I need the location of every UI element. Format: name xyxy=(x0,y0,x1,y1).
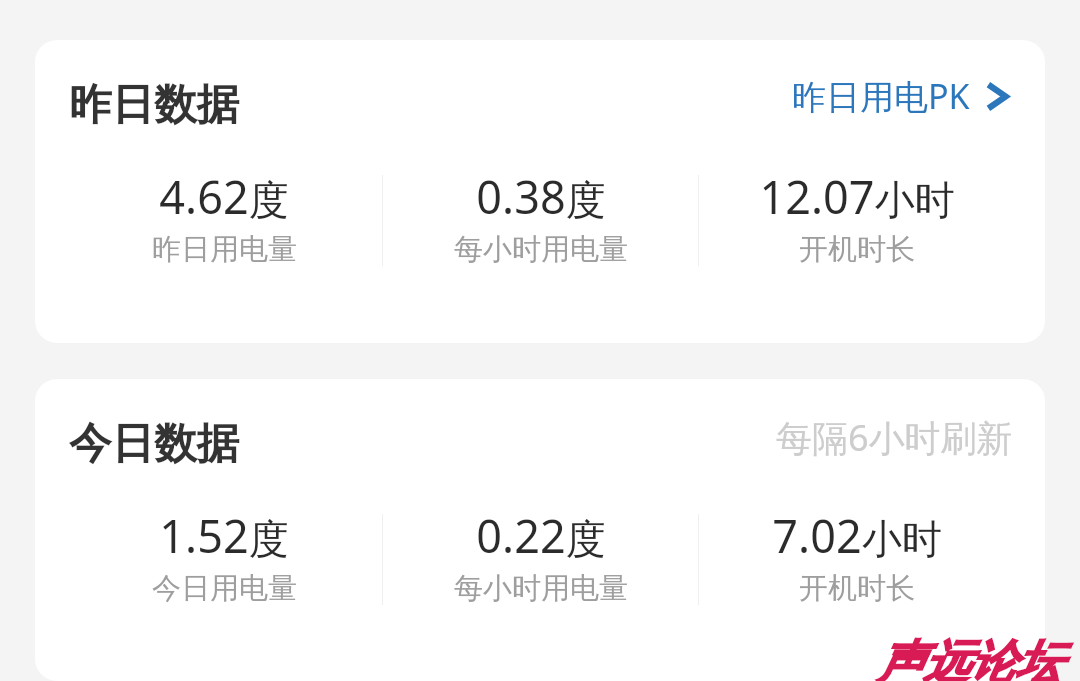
button[interactable]: 4.62度 xyxy=(66,166,382,268)
staticText: 12.07小时 xyxy=(759,166,955,227)
staticText: 0.22度 xyxy=(476,505,606,566)
staticText: 昨日用电PK xyxy=(792,73,970,119)
button[interactable]: 1.52度 xyxy=(66,505,382,607)
staticText: 每小时用电量 xyxy=(454,570,628,607)
button[interactable]: 昨日用电PK xyxy=(792,73,1006,119)
staticText: 开机时长 xyxy=(799,231,915,268)
button[interactable]: 7.02小时 xyxy=(699,505,1014,607)
button[interactable]: 0.22度 xyxy=(383,505,698,607)
button[interactable]: 12.07小时 xyxy=(699,166,1014,268)
staticText: 每隔6小时刷新 xyxy=(776,413,1013,462)
staticText: 0.38度 xyxy=(476,166,606,227)
staticText: 今日数据 xyxy=(69,417,239,471)
staticText: 声远论坛 xyxy=(877,634,1061,681)
staticText: 昨日用电量 xyxy=(152,231,297,268)
staticText: 昨日数据 xyxy=(69,78,239,132)
staticText: 开机时长 xyxy=(799,570,915,607)
staticText: 每小时用电量 xyxy=(454,231,628,268)
staticText: 今日用电量 xyxy=(152,570,297,607)
button[interactable]: 0.38度 xyxy=(383,166,698,268)
staticText: 4.62度 xyxy=(159,166,289,227)
staticText: 1.52度 xyxy=(159,505,289,566)
staticText: 7.02小时 xyxy=(772,505,942,566)
